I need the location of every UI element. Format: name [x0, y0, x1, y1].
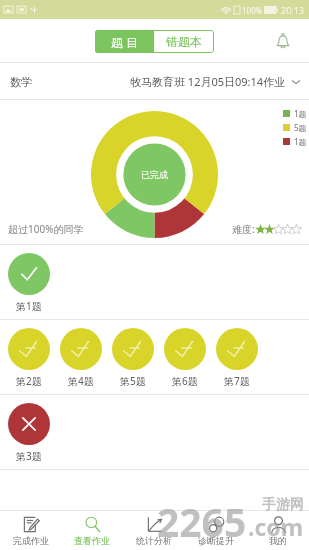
- button[interactable]: 完成作业: [0, 511, 61, 550]
- staticText: 超过100%的同学: [8, 222, 84, 236]
- staticText: 数学: [10, 75, 32, 89]
- button[interactable]: Notifications: [271, 29, 295, 53]
- button[interactable]: 第7题: [211, 320, 263, 388]
- staticText: 第3题: [16, 449, 42, 463]
- staticText: 完成作业: [13, 535, 49, 546]
- staticText: .com: [248, 511, 304, 542]
- button[interactable]: 第1题: [3, 245, 55, 313]
- staticText: 牧马教育班 12月05日09:14作业: [130, 74, 286, 89]
- staticText: 第4题: [68, 374, 94, 388]
- button[interactable]: 第5题: [107, 320, 159, 388]
- staticText: 2265: [157, 495, 247, 548]
- staticText: 第6题: [172, 374, 198, 388]
- button[interactable]: 第2题: [3, 320, 55, 388]
- staticText: 第5题: [120, 374, 146, 388]
- staticText: 手游网: [262, 496, 304, 514]
- staticText: 第2题: [16, 374, 42, 388]
- button[interactable]: 诊断提升: [185, 511, 247, 550]
- staticText: 20:13: [281, 4, 305, 16]
- staticText: 查看作业: [74, 535, 110, 546]
- staticText: 难度:: [232, 222, 255, 236]
- button[interactable]: 第6题: [159, 320, 211, 388]
- button[interactable]: 第4题: [55, 320, 107, 388]
- staticText: 统计分析: [136, 535, 172, 546]
- staticText: 第7题: [224, 374, 250, 388]
- button[interactable]: 第3题: [3, 395, 55, 463]
- button[interactable]: 牧马教育班 12月05日09:14作业: [130, 74, 301, 89]
- button[interactable]: 题 目: [95, 30, 154, 53]
- staticText: 已完成: [141, 169, 168, 180]
- button[interactable]: 统计分析: [123, 511, 185, 550]
- staticText: 5题: [294, 122, 307, 133]
- staticText: 1题: [294, 136, 307, 147]
- staticText: 诊断提升: [198, 535, 234, 546]
- button[interactable]: 错题本: [154, 30, 214, 53]
- button[interactable]: 我的: [247, 511, 309, 550]
- staticText: 我的: [269, 535, 287, 546]
- staticText: 错题本: [166, 34, 202, 49]
- staticText: 100%: [242, 5, 263, 16]
- staticText: 1题: [294, 108, 307, 119]
- staticText: 题 目: [111, 34, 139, 50]
- button[interactable]: 查看作业: [61, 511, 123, 550]
- staticText: 第1题: [16, 299, 42, 313]
